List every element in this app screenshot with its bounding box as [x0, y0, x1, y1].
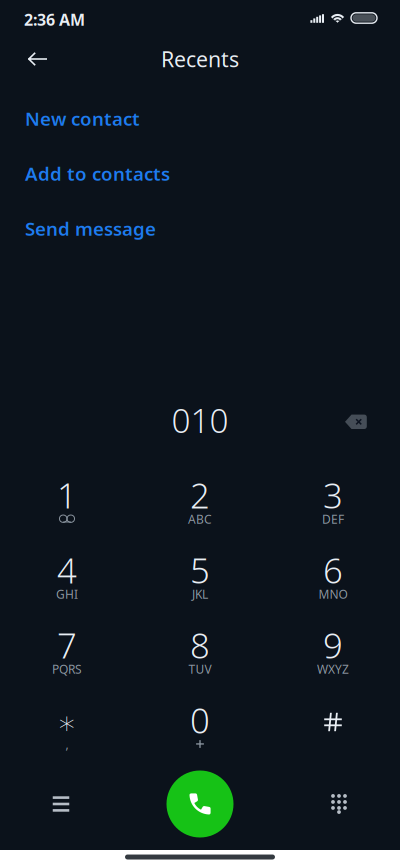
button[interactable]: 5: [133, 549, 266, 624]
staticText: Add to contacts: [25, 161, 170, 186]
button[interactable]: 3: [266, 474, 399, 549]
staticText: 2: [190, 472, 210, 518]
button[interactable]: 6: [266, 549, 399, 624]
button[interactable]: Send message: [25, 201, 400, 256]
staticText: 5: [190, 547, 210, 593]
staticText: 9: [323, 622, 343, 668]
staticText: PQRS: [52, 661, 82, 677]
button[interactable]: 4: [0, 549, 133, 624]
button[interactable]: 2: [133, 474, 266, 549]
button[interactable]: Add to contacts: [25, 146, 400, 201]
staticText: New contact: [25, 106, 140, 131]
staticText: Send message: [25, 216, 156, 241]
staticText: 010: [171, 398, 228, 442]
staticText: ∗: [57, 705, 77, 741]
button[interactable]: 0: [133, 699, 266, 774]
button[interactable]: 1: [0, 474, 133, 549]
staticText: Recents: [161, 45, 239, 73]
staticText: JKL: [192, 586, 208, 602]
button[interactable]: Back: [15, 37, 59, 81]
staticText: GHI: [56, 586, 78, 602]
staticText: DEF: [322, 511, 344, 527]
button[interactable]: 9: [266, 624, 399, 699]
button[interactable]: New contact: [25, 91, 400, 146]
staticText: 0: [190, 697, 210, 743]
button[interactable]: ∗: [0, 699, 133, 774]
staticText: WXYZ: [317, 661, 349, 677]
button[interactable]: 7: [0, 624, 133, 699]
button[interactable]: Delete: [334, 402, 378, 442]
button[interactable]: Keypad: [303, 768, 375, 840]
staticText: ,: [65, 736, 68, 752]
staticText: 8: [190, 622, 210, 668]
staticText: ABC: [188, 511, 212, 527]
button[interactable]: [266, 699, 399, 774]
staticText: 7: [57, 622, 77, 668]
button[interactable]: Call: [164, 768, 236, 840]
staticText: 3: [323, 472, 343, 518]
staticText: 4: [57, 547, 77, 593]
staticText: 2:36 AM: [24, 9, 85, 30]
button[interactable]: Call log: [25, 768, 97, 840]
staticText: TUV: [188, 661, 211, 677]
button[interactable]: 8: [133, 624, 266, 699]
staticText: 1: [57, 472, 77, 518]
staticText: MNO: [318, 586, 347, 602]
staticText: 6: [323, 547, 343, 593]
